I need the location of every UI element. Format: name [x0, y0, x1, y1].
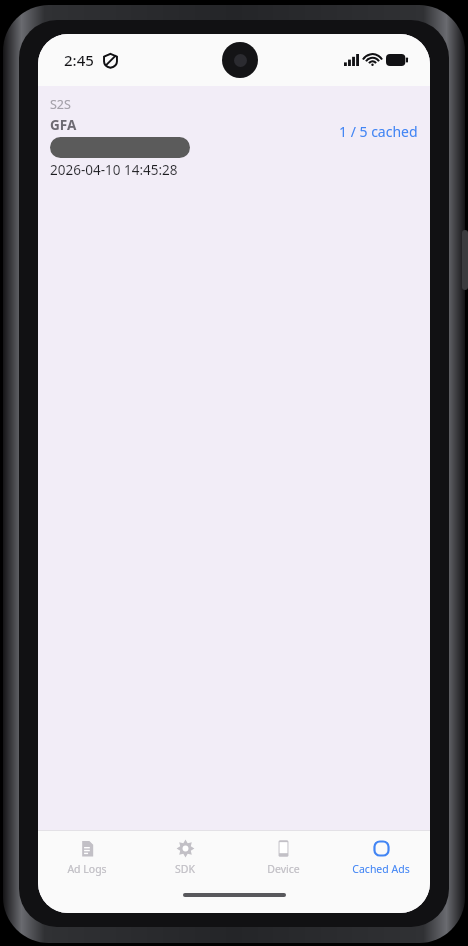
- button[interactable]: Device: [234, 835, 332, 880]
- other: Ad Logs: [78, 839, 97, 858]
- staticText: 1 / 5 cached: [339, 122, 418, 141]
- staticText: Device: [267, 862, 300, 876]
- staticText: Cached Ads: [352, 862, 410, 876]
- other: SDK: [176, 839, 195, 858]
- staticText: Ad Logs: [67, 862, 107, 876]
- button[interactable]: SDK: [136, 835, 234, 880]
- staticText: S2S: [50, 96, 71, 113]
- other: Device: [274, 839, 293, 858]
- staticText: 2:45: [64, 50, 94, 70]
- staticText: 2026-04-10 14:45:28: [50, 161, 178, 179]
- button[interactable]: Cached Ads: [332, 835, 430, 880]
- staticText: SDK: [175, 862, 195, 876]
- staticText: GFA: [50, 116, 77, 134]
- other: Cached Ads: [372, 839, 391, 858]
- button[interactable]: Ad Logs: [38, 835, 136, 880]
